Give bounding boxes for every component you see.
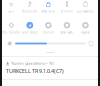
staticText: Ekran kaydı — [60, 31, 73, 34]
button[interactable]: Ekran kaydı — [58, 21, 76, 35]
staticText: Güç tasarrufu — [77, 10, 94, 13]
staticText: El feneri — [61, 10, 73, 13]
staticText: Oto. döndür — [2, 31, 20, 34]
button[interactable]: Gece modu — [21, 21, 39, 35]
button[interactable]: El feneri — [58, 0, 76, 14]
staticText: TURKCELL TR 9.1.0.4(C7) — [6, 67, 64, 74]
button[interactable]: Yazılım güncelleme • %1 — [2, 57, 98, 79]
staticText: Yazılım güncelleme • %1 — [11, 61, 54, 66]
staticText: Bluetooth — [22, 10, 37, 13]
staticText: Konum — [43, 31, 53, 34]
button[interactable]: Konum — [39, 21, 58, 35]
button[interactable]: Ayarlar — [76, 21, 95, 35]
button[interactable]: Bluetooth — [21, 0, 39, 14]
button[interactable]: Wi-Fi — [2, 0, 21, 14]
button[interactable]: Auto brightness — [89, 41, 93, 45]
staticText: Wi-Fi — [8, 10, 14, 13]
staticText: Gece modu — [22, 31, 38, 34]
staticText: Ekran kilidi — [41, 10, 55, 13]
button[interactable]: Ekran kilidi — [39, 0, 58, 14]
button[interactable]: Oto. döndür — [2, 21, 21, 35]
button[interactable]: Güç tasarrufu — [76, 0, 95, 14]
staticText: Ayarlar — [81, 31, 89, 34]
